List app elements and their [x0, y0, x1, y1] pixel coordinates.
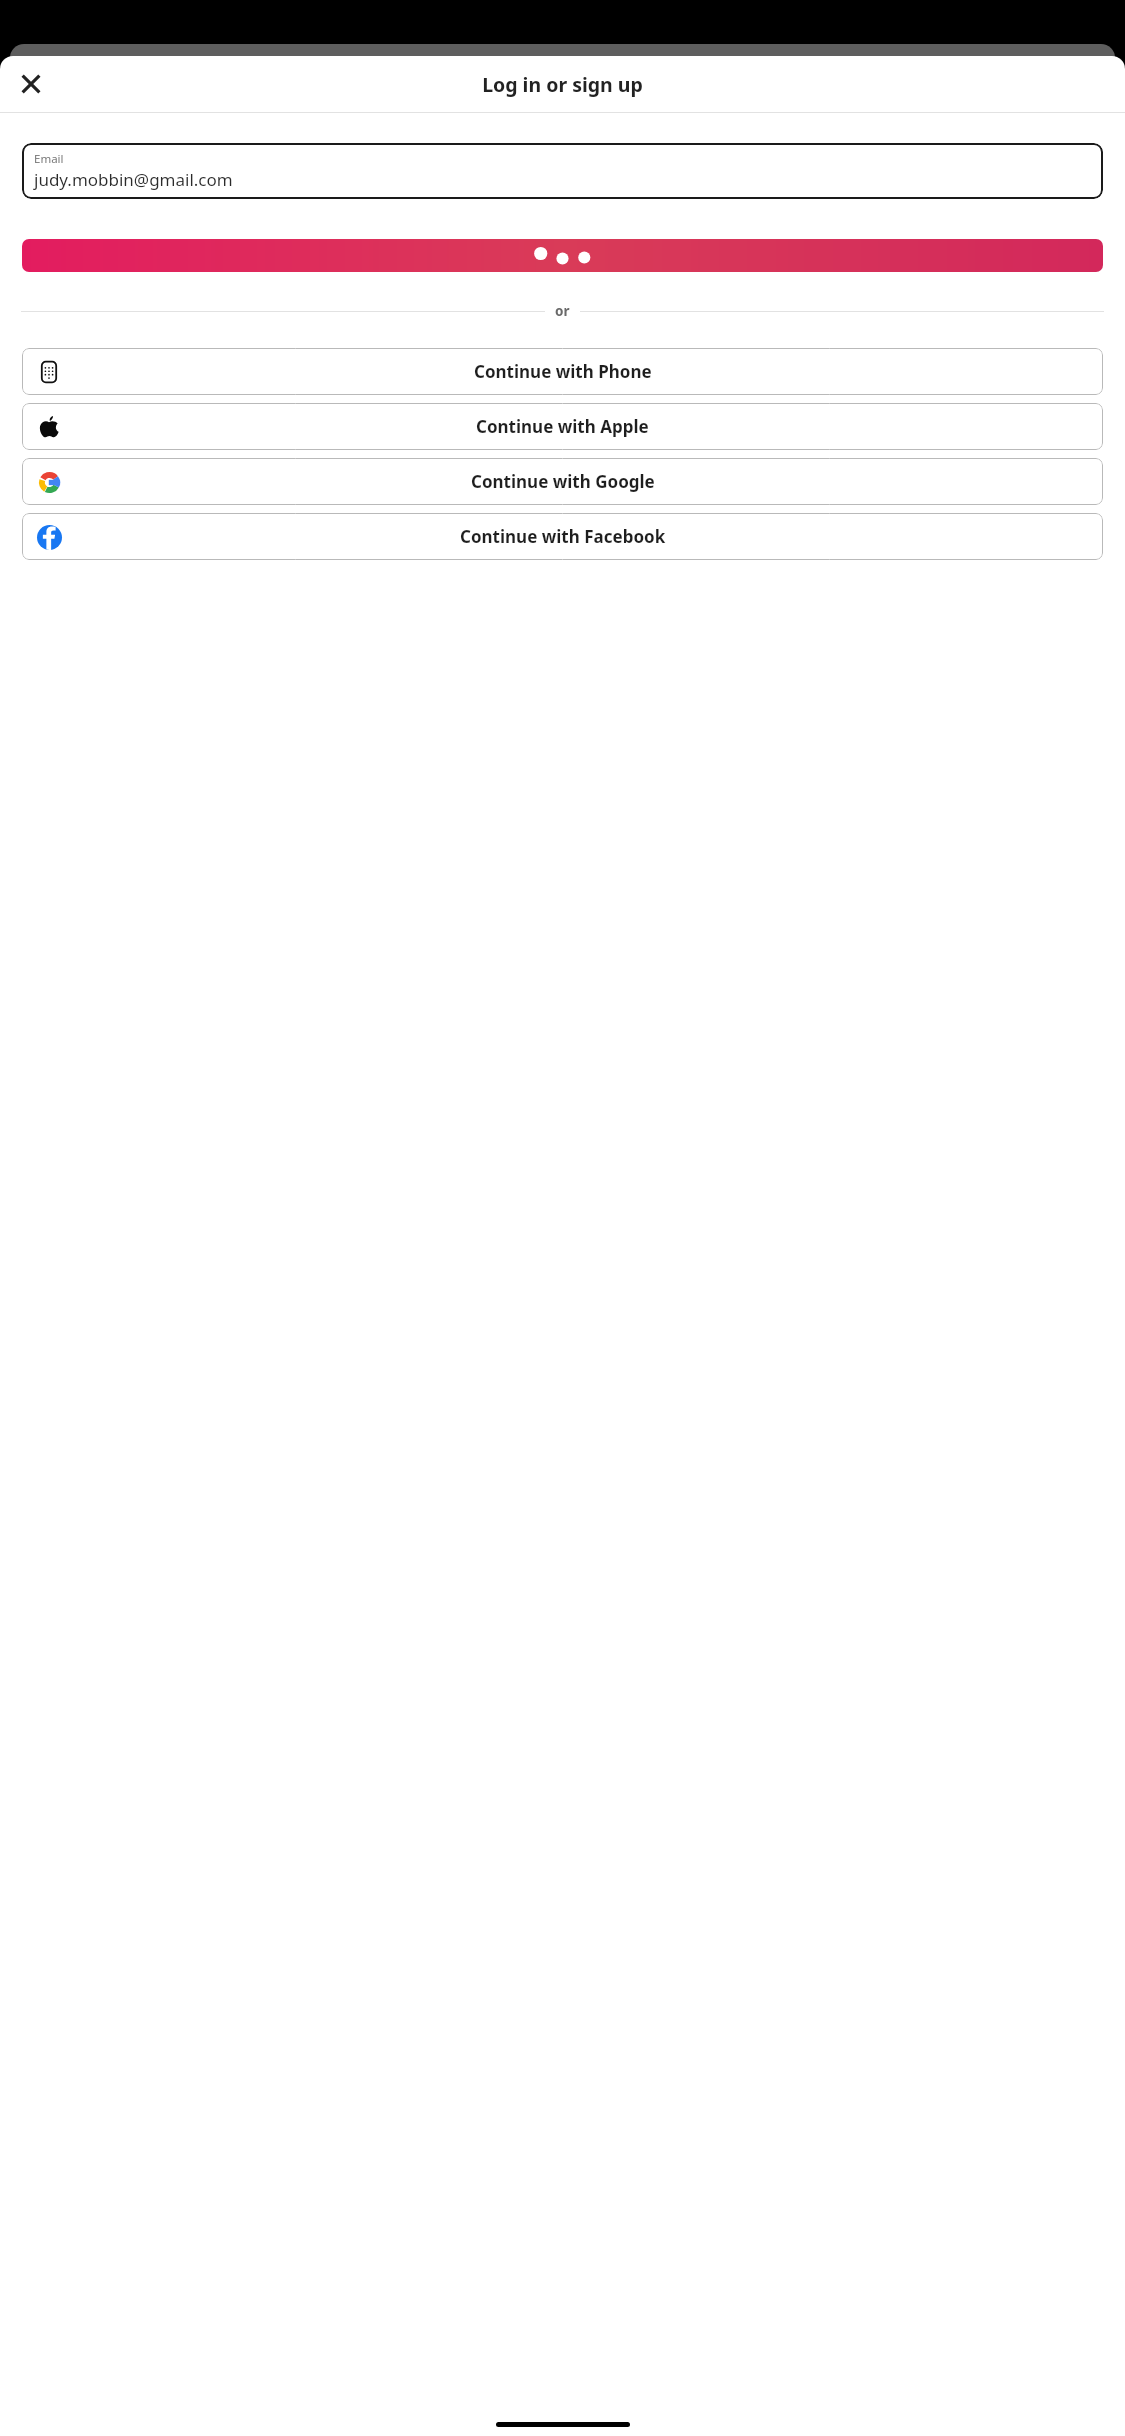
button[interactable]: Continue with Phone — [22, 348, 1103, 395]
button[interactable]: Email — [22, 143, 1103, 199]
button[interactable]: Close — [9, 62, 53, 106]
staticText: or — [555, 302, 570, 320]
staticText: Continue with Apple — [476, 415, 649, 438]
staticText: Continue with Phone — [474, 360, 652, 383]
button[interactable]: Continue with Google — [22, 458, 1103, 505]
staticText: Log in or sign up — [482, 71, 643, 98]
button[interactable]: Continue with Facebook — [22, 513, 1103, 560]
button[interactable]: Continue, loading — [22, 239, 1103, 272]
staticText: Email — [34, 151, 64, 167]
button[interactable]: Continue with Apple — [22, 403, 1103, 450]
staticText: Continue with Facebook — [460, 525, 666, 548]
staticText: Continue with Google — [471, 470, 655, 493]
staticText: judy.mobbin@gmail.com — [34, 168, 233, 191]
